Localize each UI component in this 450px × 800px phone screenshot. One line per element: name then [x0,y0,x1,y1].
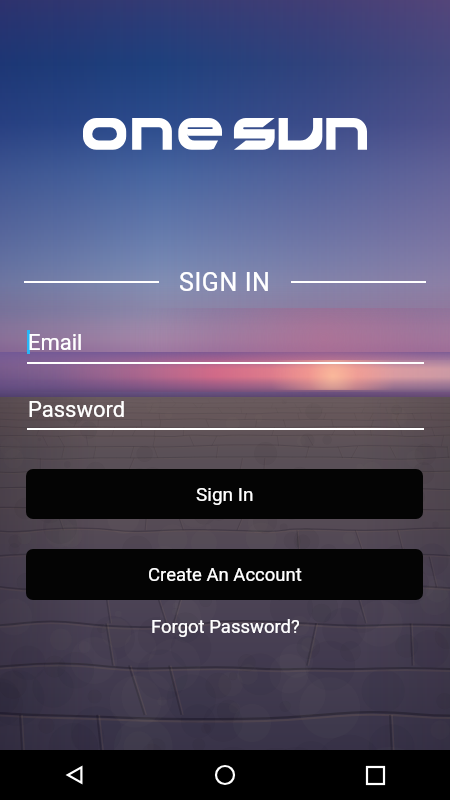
button[interactable]: Home [201,751,249,799]
button[interactable]: Sign In [26,469,423,519]
button[interactable]: Email [24,327,424,367]
staticText: Sign In [196,483,254,505]
staticText: Create An Account [148,564,302,586]
staticText: SIGN IN [179,268,271,296]
staticText: Forgot Password? [151,616,300,638]
button[interactable]: Back [51,751,99,799]
staticText: Password [28,397,126,423]
button[interactable]: Recent apps [351,751,399,799]
button[interactable]: Create An Account [26,549,423,600]
button[interactable]: Password [24,394,424,434]
staticText: Email [28,330,83,356]
button[interactable]: Forgot Password? [125,610,325,644]
